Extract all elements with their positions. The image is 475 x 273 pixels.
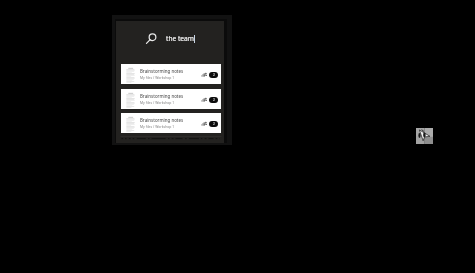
other: Collaborators <box>201 121 207 126</box>
staticText: 2 <box>213 122 215 126</box>
staticText: My files / Workshop 1 <box>140 124 175 129</box>
button[interactable]: 2 <box>209 121 218 127</box>
staticText: 2 <box>213 98 215 102</box>
button[interactable]: 2 <box>209 72 218 78</box>
button[interactable]: Search <box>116 21 224 64</box>
staticText: Brainstorming notes <box>140 93 184 99</box>
button[interactable]: 2 <box>209 97 218 103</box>
other: Collaborators <box>201 72 207 77</box>
staticText: My files / Workshop 1 <box>140 100 175 105</box>
button[interactable]: Brainstorming notes <box>121 113 221 133</box>
staticText: the team <box>166 34 194 43</box>
button[interactable]: Brainstorming notes <box>121 64 221 84</box>
button[interactable]: Brainstorming notes <box>121 89 221 109</box>
staticText: My files / Workshop 1 <box>140 75 175 80</box>
staticText: 2 <box>213 73 215 77</box>
other: Collaborators <box>201 97 207 102</box>
other: Search <box>146 32 157 43</box>
staticText: Brainstorming notes <box>140 117 184 123</box>
staticText: Brainstorming notes <box>140 68 184 74</box>
button[interactable]: Pointer <box>416 128 433 144</box>
